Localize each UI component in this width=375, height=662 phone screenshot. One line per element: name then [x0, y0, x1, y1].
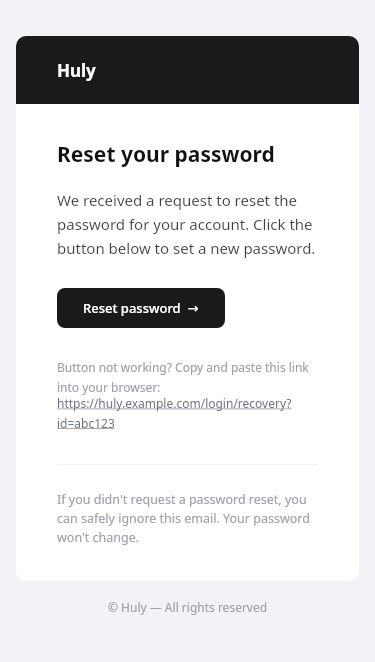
button[interactable]: Reset password → [57, 288, 225, 328]
button[interactable]: https://huly.example.com/login/recovery?… [57, 395, 318, 431]
staticText: We received a request to reset the passw… [57, 190, 318, 258]
staticText: Button not working? Copy and paste this … [57, 359, 318, 395]
staticText: If you didn't request a password reset, … [57, 491, 318, 546]
staticText: Huly [57, 59, 96, 82]
staticText: https://huly.example.com/login/recovery?… [57, 395, 318, 431]
staticText: Reset password → [83, 299, 199, 317]
staticText: Reset your password [57, 140, 275, 169]
staticText: © Huly — All rights reserved [108, 599, 268, 615]
